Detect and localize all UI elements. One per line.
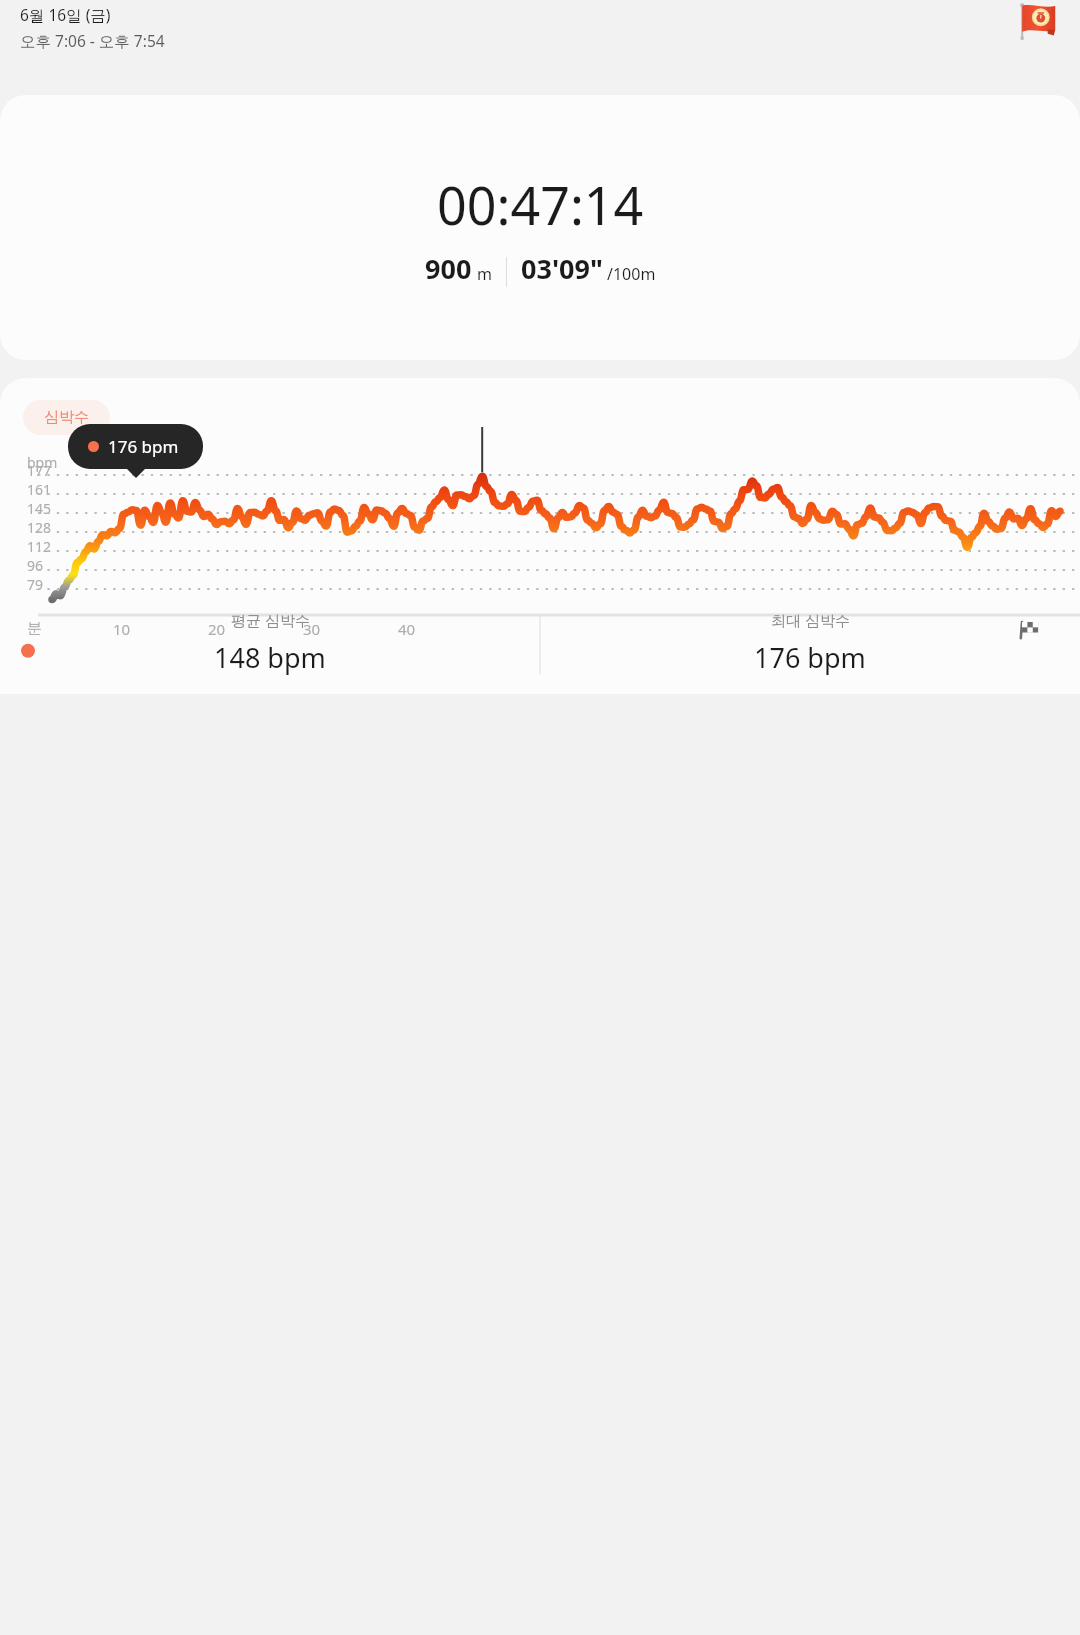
staticText: m: [477, 263, 492, 285]
staticText: 분: [27, 619, 42, 638]
staticText: 20: [208, 619, 226, 639]
staticText: 145: [27, 499, 52, 518]
staticText: 900: [425, 250, 472, 287]
staticText: 96: [27, 556, 44, 575]
staticText: 79: [27, 575, 44, 594]
staticText: 30: [303, 619, 321, 639]
button[interactable]: 최대 심박수: [540, 604, 1080, 676]
button[interactable]: Achievement badge: [1018, 2, 1056, 40]
staticText: 177: [27, 461, 52, 480]
staticText: bpm: [27, 453, 58, 472]
staticText: 00:47:14: [437, 169, 644, 240]
staticText: 평균 심박수: [231, 610, 310, 630]
button[interactable]: 176 bpm: [68, 424, 203, 469]
staticText: 심박수: [44, 408, 89, 427]
staticText: 148 bpm: [214, 639, 326, 676]
staticText: /100m: [607, 263, 656, 285]
staticText: 10: [113, 619, 131, 639]
button[interactable]: 평균 심박수: [0, 604, 540, 676]
staticText: 6월 16일 (금): [20, 4, 111, 25]
staticText: 112: [27, 537, 52, 556]
staticText: 오후 7:06 - 오후 7:54: [20, 30, 165, 51]
button[interactable]: 심박수: [23, 400, 110, 435]
staticText: 176 bpm: [754, 639, 866, 676]
staticText: 128: [27, 518, 52, 537]
staticText: 161: [27, 480, 52, 499]
button[interactable]: 00:47:14: [0, 95, 1080, 360]
staticText: 40: [398, 619, 416, 639]
staticText: 176 bpm: [108, 435, 179, 458]
staticText: 03'09": [521, 250, 603, 287]
staticText: 최대 심박수: [771, 610, 850, 630]
